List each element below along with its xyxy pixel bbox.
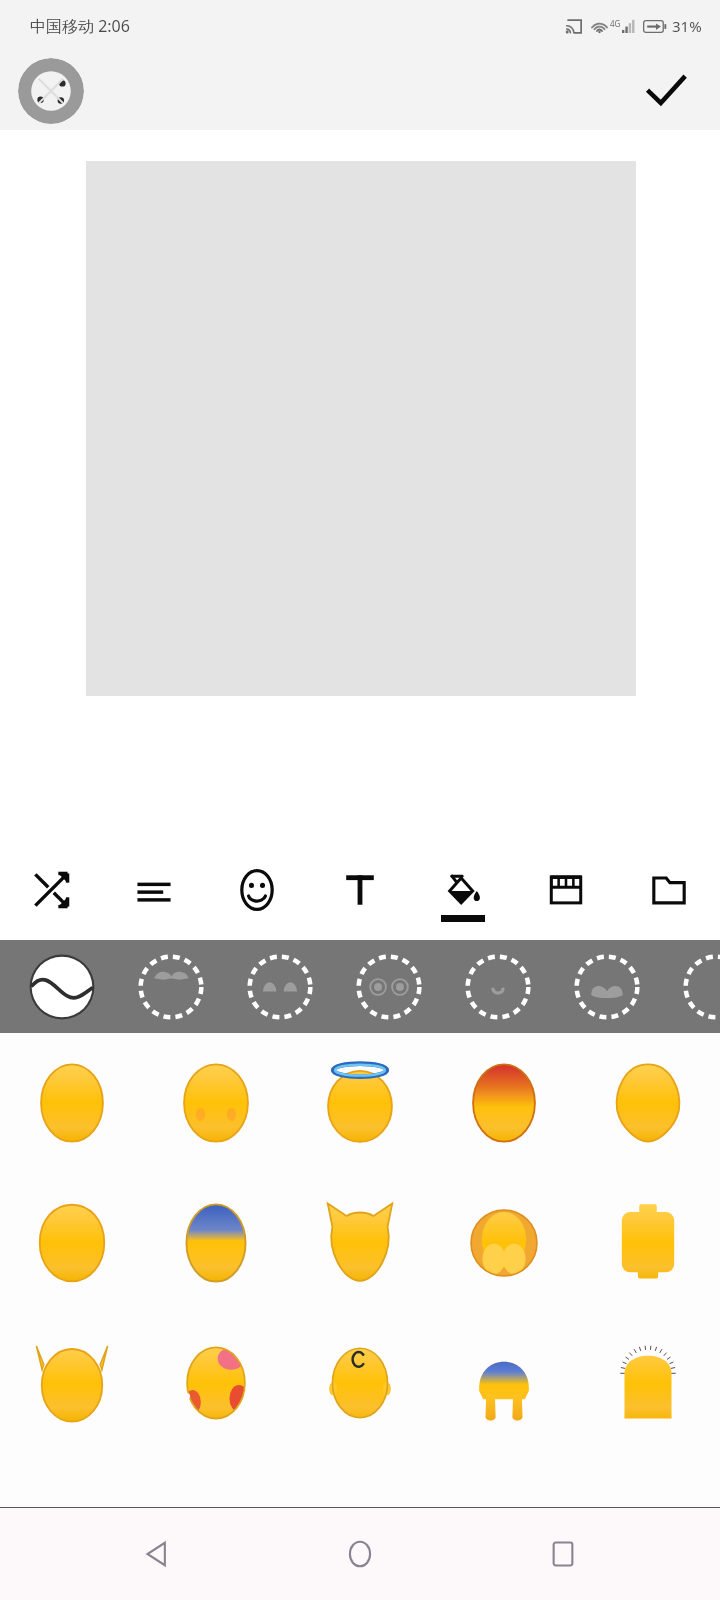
- button[interactable]: Layers: [102, 840, 205, 940]
- button[interactable]: Face base 11: [0, 1313, 144, 1453]
- button[interactable]: Eyebrows: [234, 941, 326, 1033]
- button[interactable]: Face base 15: [576, 1313, 720, 1453]
- button[interactable]: More: [670, 941, 720, 1033]
- button[interactable]: Mouth: [452, 941, 544, 1033]
- button[interactable]: Eyes: [343, 941, 435, 1033]
- button[interactable]: Faces: [205, 840, 308, 940]
- staticText: 31%: [672, 16, 702, 36]
- button[interactable]: Fill color: [411, 840, 514, 940]
- button[interactable]: Store: [514, 840, 617, 940]
- button[interactable]: Base shape: [16, 941, 108, 1033]
- button[interactable]: Face base 9: [432, 1173, 576, 1313]
- button[interactable]: Face base 8: [288, 1173, 432, 1313]
- button[interactable]: Reset crop: [18, 58, 84, 124]
- button[interactable]: Face base 1: [0, 1033, 144, 1173]
- button[interactable]: Recent apps: [517, 1508, 609, 1600]
- button[interactable]: Back: [111, 1508, 203, 1600]
- button[interactable]: Shuffle: [0, 840, 102, 940]
- button[interactable]: Face base 3: [288, 1033, 432, 1173]
- button[interactable]: Face base 4: [432, 1033, 576, 1173]
- staticText: 中国移动 2:06: [30, 15, 130, 37]
- button[interactable]: Face base 6: [0, 1173, 144, 1313]
- staticText: 4G: [610, 18, 621, 29]
- button[interactable]: Moustache: [561, 941, 653, 1033]
- button[interactable]: Text: [308, 840, 411, 940]
- button[interactable]: Face base 12: [144, 1313, 288, 1453]
- button[interactable]: Folder: [617, 840, 720, 940]
- button[interactable]: Home: [314, 1508, 406, 1600]
- button[interactable]: Done: [638, 63, 694, 119]
- button[interactable]: Face base 2: [144, 1033, 288, 1173]
- button[interactable]: Face base 5: [576, 1033, 720, 1173]
- button[interactable]: Face base 10: [576, 1173, 720, 1313]
- button[interactable]: Face base 7: [144, 1173, 288, 1313]
- button[interactable]: Face base 13: [288, 1313, 432, 1453]
- button[interactable]: Face base 14: [432, 1313, 576, 1453]
- button[interactable]: Hair: [125, 941, 217, 1033]
